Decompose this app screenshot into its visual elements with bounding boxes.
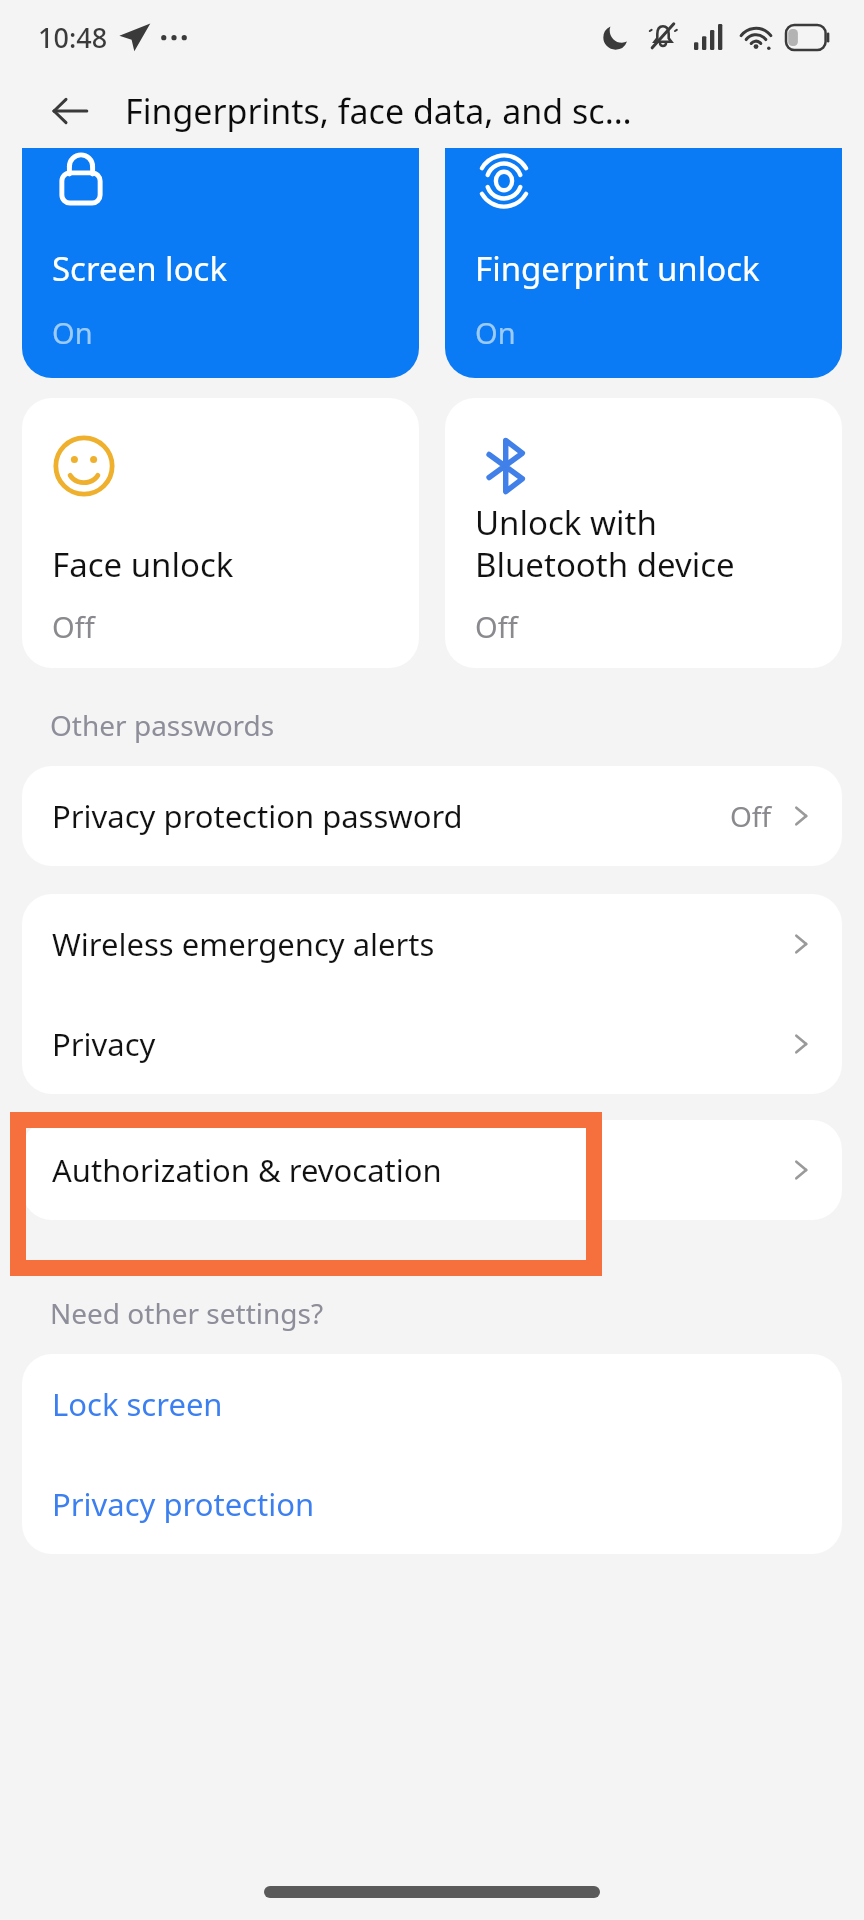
button[interactable]: Privacy — [22, 994, 842, 1094]
staticText: Privacy protection password — [52, 795, 730, 837]
button[interactable]: Wireless emergency alerts — [22, 894, 842, 994]
staticText: Off — [52, 607, 95, 646]
staticText: On — [475, 313, 516, 352]
button[interactable]: Unlock with Bluetooth device — [445, 398, 842, 668]
button[interactable]: Authorization & revocation — [22, 1120, 842, 1220]
button[interactable]: Back — [40, 81, 100, 141]
staticText: Unlock with Bluetooth device — [475, 500, 735, 587]
button[interactable]: Face unlock — [22, 398, 419, 668]
button[interactable]: Lock screen — [22, 1354, 842, 1454]
staticText: Off — [730, 797, 772, 835]
button[interactable]: Privacy protection — [22, 1454, 842, 1554]
staticText: Privacy — [52, 1023, 788, 1065]
staticText: Screen lock — [52, 246, 228, 291]
staticText: Other passwords — [50, 706, 275, 744]
staticText: Need other settings? — [50, 1294, 324, 1332]
staticText: Privacy protection — [52, 1483, 315, 1525]
staticText: Wireless emergency alerts — [52, 923, 788, 965]
button[interactable]: Fingerprint unlock — [445, 148, 842, 378]
button[interactable]: Privacy protection password — [22, 766, 842, 866]
staticText: Authorization & revocation — [52, 1149, 788, 1191]
button[interactable]: Screen lock — [22, 148, 419, 378]
staticText: Face unlock — [52, 542, 234, 587]
staticText: Fingerprint unlock — [475, 246, 760, 291]
staticText: Lock screen — [52, 1383, 223, 1425]
staticText: Off — [475, 607, 518, 646]
staticText: Fingerprints, face data, and sc… — [125, 88, 632, 134]
staticText: 10:48 — [38, 19, 108, 56]
staticText: On — [52, 313, 93, 352]
